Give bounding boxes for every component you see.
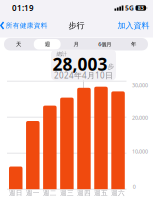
staticText: 週日 xyxy=(9,189,23,197)
staticText: 01:19 xyxy=(12,3,34,13)
button[interactable]: 天 xyxy=(4,38,33,50)
staticText: 28,003 xyxy=(52,52,107,75)
staticText: 週六 xyxy=(111,189,125,197)
staticText: 週二 xyxy=(43,189,57,197)
staticText: 步 xyxy=(107,62,114,71)
staticText: 0 xyxy=(133,183,136,190)
staticText: 6個月 xyxy=(98,41,111,48)
staticText: 週 xyxy=(45,41,50,48)
staticText: 總計 xyxy=(56,51,66,57)
staticText: 週四 xyxy=(77,189,91,197)
staticText: 10,000 xyxy=(132,148,148,155)
button[interactable]: 週 xyxy=(33,38,62,50)
staticText: 20,000 xyxy=(132,114,148,121)
staticText: 所有健康資料 xyxy=(6,21,48,30)
button[interactable]: 月 xyxy=(62,38,90,50)
staticText: 加入資料 xyxy=(117,21,149,30)
staticText: 5G xyxy=(125,4,134,12)
staticText: 30,000 xyxy=(132,82,148,89)
staticText: 週一 xyxy=(26,189,40,197)
staticText: 天 xyxy=(16,41,21,48)
staticText: 週五 xyxy=(94,189,108,197)
button[interactable]: 年 xyxy=(119,38,148,50)
button[interactable]: 加入資料 xyxy=(117,21,149,30)
staticText: 週三 xyxy=(60,189,74,197)
staticText: 年 xyxy=(131,41,136,48)
button[interactable]: 所有健康資料 xyxy=(0,21,48,30)
staticText: 步行 xyxy=(68,21,84,30)
button[interactable]: 6個月 xyxy=(90,38,119,50)
staticText: 2024年4月10日 xyxy=(54,70,113,81)
staticText: 月 xyxy=(73,41,78,48)
staticText: 83 xyxy=(138,4,144,12)
